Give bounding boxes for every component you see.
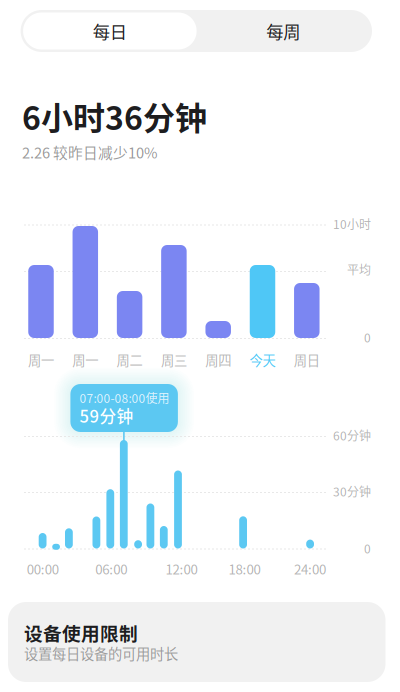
staticText: 每日	[93, 18, 127, 44]
staticText: 周三	[161, 350, 187, 369]
staticText: 周一	[28, 350, 54, 369]
staticText: 0	[364, 328, 371, 346]
staticText: 00:00	[27, 559, 59, 578]
staticText: 设置每日设备的可用时长	[24, 643, 178, 664]
staticText: 周日	[294, 350, 320, 369]
staticText: 12:00	[165, 559, 197, 578]
staticText: 07:00-08:00使用	[79, 389, 169, 406]
staticText: 周四	[205, 350, 231, 369]
staticText: 59分钟	[79, 403, 133, 428]
staticText: 每周	[266, 18, 300, 44]
staticText: 24:00	[294, 559, 326, 578]
staticText: 06:00	[95, 559, 127, 578]
staticText: 今天	[249, 350, 275, 369]
staticText: 10小时	[333, 215, 371, 232]
staticText: 周二	[117, 350, 143, 369]
staticText: 30分钟	[333, 482, 371, 500]
staticText: 设备使用限制	[24, 619, 138, 646]
staticText: 周一	[72, 350, 98, 369]
staticText: 6小时36分钟	[22, 93, 207, 139]
staticText: 0	[364, 539, 371, 557]
staticText: 60分钟	[333, 426, 371, 444]
staticText: 平均	[347, 260, 371, 278]
staticText: 18:00	[228, 559, 260, 578]
button[interactable]: 每周	[197, 12, 370, 49]
button[interactable]: 设备使用限制	[8, 602, 385, 682]
button[interactable]: 每日	[23, 12, 197, 49]
staticText: 2.26 较昨日减少10%	[22, 141, 158, 163]
